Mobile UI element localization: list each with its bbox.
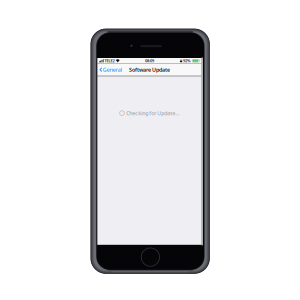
- staticText: Checking for Update…: [126, 110, 179, 117]
- staticText: 92%: [183, 58, 191, 63]
- button[interactable]: General: [97, 64, 124, 76]
- staticText: Software Update: [129, 66, 170, 73]
- staticText: 08:09: [145, 58, 154, 63]
- staticText: TELE2: [104, 58, 114, 63]
- staticText: General: [103, 66, 122, 73]
